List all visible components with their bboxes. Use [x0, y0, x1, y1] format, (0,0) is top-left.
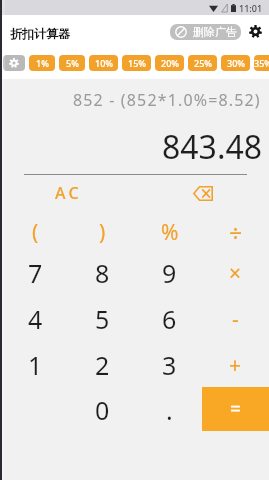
staticText: 843.48: [162, 125, 263, 169]
staticText: AC: [55, 182, 83, 204]
button[interactable]: 删除广告: [170, 24, 241, 40]
staticText: ×: [229, 259, 242, 288]
button[interactable]: Settings: [249, 25, 262, 38]
button[interactable]: ): [69, 210, 136, 254]
button[interactable]: .: [136, 388, 203, 432]
staticText: 11:01: [239, 2, 263, 14]
button[interactable]: 15%: [122, 55, 151, 71]
button[interactable]: 7: [2, 251, 69, 295]
button[interactable]: +: [202, 343, 269, 387]
staticText: -: [232, 305, 239, 334]
staticText: 2: [95, 348, 110, 382]
staticText: .: [166, 393, 173, 427]
staticText: 折扣计算器: [10, 26, 70, 41]
staticText: 20%: [161, 57, 179, 69]
staticText: 1: [28, 348, 43, 382]
button[interactable]: 5: [69, 297, 136, 341]
staticText: 15%: [128, 57, 146, 69]
button[interactable]: 6: [136, 297, 203, 341]
staticText: 10%: [95, 57, 113, 69]
staticText: 35%: [254, 57, 269, 69]
button[interactable]: (: [2, 210, 69, 254]
staticText: 30%: [227, 57, 245, 69]
staticText: 5%: [66, 57, 79, 69]
staticText: 1%: [36, 57, 49, 69]
button[interactable]: 5%: [59, 55, 85, 71]
button[interactable]: ×: [202, 251, 269, 295]
button[interactable]: -: [202, 297, 269, 341]
button[interactable]: 35%: [254, 55, 269, 71]
button[interactable]: AC: [2, 171, 136, 215]
button[interactable]: Backspace: [136, 171, 269, 215]
button[interactable]: 0: [69, 388, 136, 432]
button[interactable]: ÷: [202, 210, 269, 254]
button[interactable]: 1: [2, 343, 69, 387]
staticText: 5: [95, 302, 110, 336]
button[interactable]: =: [202, 387, 269, 431]
staticText: ÷: [229, 217, 243, 248]
staticText: 0: [95, 393, 110, 427]
button[interactable]: 30%: [221, 55, 250, 71]
staticText: 删除广告: [193, 25, 237, 39]
staticText: %: [161, 218, 179, 247]
button[interactable]: %: [136, 210, 203, 254]
button[interactable]: 25%: [188, 55, 217, 71]
button[interactable]: 20%: [155, 55, 184, 71]
button[interactable]: 10%: [89, 55, 118, 71]
button[interactable]: 4: [2, 297, 69, 341]
staticText: (: [32, 218, 39, 247]
staticText: =: [230, 396, 241, 422]
button[interactable]: 2: [69, 343, 136, 387]
button[interactable]: Discount settings: [3, 55, 25, 71]
staticText: 6: [162, 302, 177, 336]
button[interactable]: 3: [136, 343, 203, 387]
button[interactable]: 1%: [29, 55, 55, 71]
staticText: ): [99, 218, 106, 247]
staticText: 4: [28, 302, 43, 336]
button[interactable]: 9: [136, 251, 203, 295]
staticText: 9: [162, 256, 177, 290]
staticText: 8: [95, 256, 110, 290]
staticText: 25%: [194, 57, 212, 69]
staticText: +: [229, 351, 242, 380]
staticText: 3: [162, 348, 177, 382]
staticText: 7: [28, 256, 43, 290]
button[interactable]: 8: [69, 251, 136, 295]
staticText: 852 - (852*1.0%=8.52): [73, 89, 261, 111]
